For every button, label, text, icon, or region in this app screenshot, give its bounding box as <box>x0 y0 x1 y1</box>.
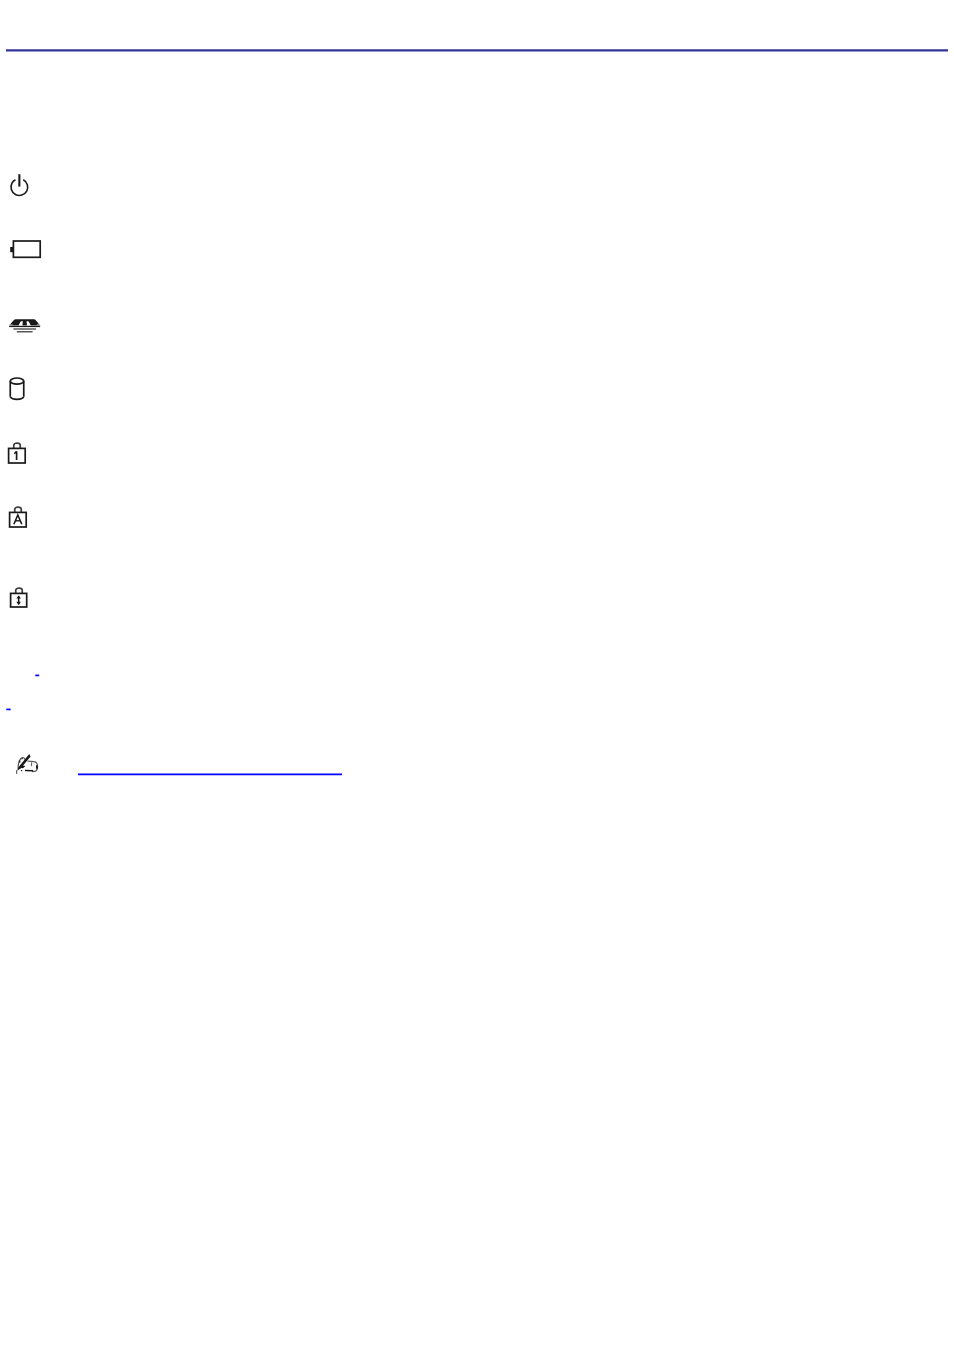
button[interactable]: Power indicator <box>10 172 30 198</box>
button[interactable]: Scroll lock indicator <box>10 585 30 610</box>
button[interactable]: Cross reference <box>35 673 41 677</box>
button[interactable]: Drive activity indicator <box>9 376 26 401</box>
button[interactable]: Wireless activity indicator <box>9 316 42 335</box>
button[interactable]: Open referenced section <box>78 768 342 780</box>
button[interactable]: Number lock indicator <box>8 440 27 465</box>
button[interactable]: Capital lock indicator <box>9 504 29 529</box>
button[interactable]: Battery charge indicator <box>10 239 42 259</box>
button[interactable]: Note <box>16 753 41 777</box>
button[interactable]: Cross reference <box>6 707 13 711</box>
